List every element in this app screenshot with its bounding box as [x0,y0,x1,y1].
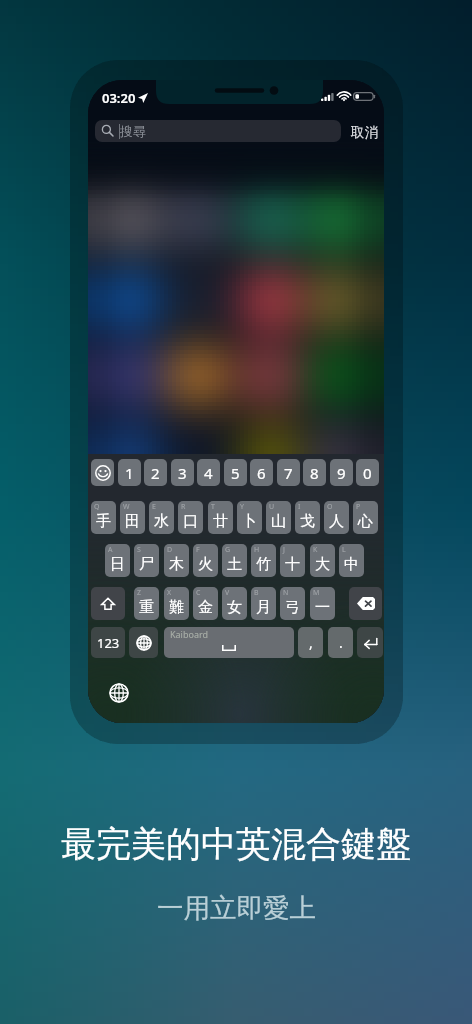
button[interactable]: 搜尋 [95,120,341,142]
staticText: 戈 [300,512,315,531]
button[interactable]: O [324,501,349,534]
button[interactable]: L [339,544,364,577]
button[interactable]: W [120,501,145,534]
button[interactable]: Z [134,587,159,620]
staticText: 十 [285,555,300,574]
staticText: 田 [125,512,140,531]
button[interactable]: 9 [330,459,353,486]
staticText: 土 [227,555,242,574]
staticText: C [196,588,201,598]
staticText: 手 [96,512,111,531]
staticText: 水 [154,512,169,531]
staticText: 一用立即愛上 [157,891,316,924]
staticText: 口 [183,512,198,531]
staticText: 123 [97,634,120,652]
button[interactable]: I [295,501,320,534]
staticText: 中 [344,555,359,574]
button[interactable]: Backspace [349,587,382,620]
button[interactable]: 3 [171,459,194,486]
button[interactable]: 4 [197,459,220,486]
staticText: 重 [139,598,154,617]
button[interactable]: 0 [356,459,379,486]
button[interactable]: 2 [144,459,167,486]
staticText: 月 [256,598,271,617]
button[interactable]: 1 [118,459,141,486]
staticText: 7 [284,463,293,483]
button[interactable]: . [328,627,353,658]
button[interactable]: J [280,544,305,577]
staticText: K [313,545,318,555]
staticText: 搜尋 [120,123,146,139]
staticText: J [283,545,285,555]
staticText: M [313,588,320,598]
staticText: 難 [169,598,184,617]
staticText: A [108,545,113,555]
staticText: S [137,545,141,555]
button[interactable]: Y [237,501,262,534]
button[interactable]: 取消 [351,124,378,141]
staticText: 竹 [256,555,271,574]
button[interactable]: C [193,587,218,620]
button[interactable]: H [251,544,276,577]
staticText: T [211,502,215,512]
staticText: 取消 [351,124,378,141]
button[interactable]: 5 [224,459,247,486]
button[interactable]: 8 [303,459,326,486]
staticText: 卜 [242,512,257,531]
staticText: 4 [204,463,213,483]
button[interactable]: Language [109,683,129,703]
staticText: 金 [198,598,213,617]
staticText: 一 [315,598,330,617]
staticText: G [225,545,231,555]
button[interactable]: T [208,501,233,534]
staticText: U [269,502,275,512]
button[interactable]: , [298,627,323,658]
staticText: V [225,588,230,598]
staticText: Z [137,588,142,598]
staticText: H [254,545,260,555]
button[interactable]: 7 [277,459,300,486]
button[interactable]: E [149,501,174,534]
staticText: 6 [257,463,266,483]
button[interactable]: R [178,501,203,534]
staticText: 山 [271,512,286,531]
staticText: 9 [337,463,346,483]
button[interactable]: Switch keyboard [129,627,158,658]
staticText: 0 [363,463,372,483]
staticText: O [327,502,333,512]
button[interactable]: K [310,544,335,577]
staticText: 8 [310,463,319,483]
button[interactable]: X [164,587,189,620]
button[interactable]: Return [357,627,383,658]
button[interactable]: B [251,587,276,620]
button[interactable]: U [266,501,291,534]
staticText: N [283,588,289,598]
button[interactable]: G [222,544,247,577]
staticText: 最完美的中英混合鍵盤 [61,822,411,866]
button[interactable]: F [193,544,218,577]
button[interactable]: N [280,587,305,620]
staticText: Q [94,502,100,512]
button[interactable]: Q [91,501,116,534]
staticText: 1 [125,463,134,483]
staticText: R [181,502,186,512]
button[interactable]: 123 [91,627,125,658]
button[interactable]: P [353,501,378,534]
button[interactable]: Emoji [91,459,114,486]
button[interactable]: S [134,544,159,577]
button[interactable]: 6 [250,459,273,486]
staticText: 3 [178,463,187,483]
staticText: , [309,633,313,652]
button[interactable]: M [310,587,335,620]
button[interactable]: Kaiboard [164,627,294,658]
staticText: 廿 [213,512,228,531]
button[interactable]: A [105,544,130,577]
staticText: Y [240,502,244,512]
staticText: I [298,502,301,512]
staticText: 火 [198,555,213,574]
button[interactable]: D [164,544,189,577]
button[interactable]: Shift [91,587,125,620]
button[interactable]: V [222,587,247,620]
staticText: X [167,588,172,598]
staticText: F [196,545,200,555]
